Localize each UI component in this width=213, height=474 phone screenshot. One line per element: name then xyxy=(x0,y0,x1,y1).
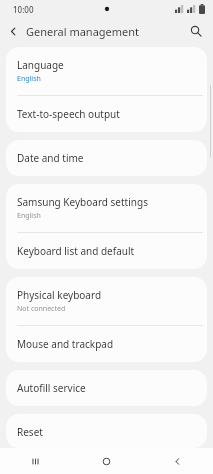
staticText: Samsung Keyboard settings xyxy=(17,195,148,209)
staticText: Keyboard list and default xyxy=(17,244,135,258)
staticText: Date and time xyxy=(17,151,84,165)
button[interactable]: Search xyxy=(183,18,209,44)
staticText: Language xyxy=(17,58,64,72)
staticText: Physical keyboard xyxy=(17,288,102,302)
button[interactable]: Keyboard list and default xyxy=(6,233,207,269)
staticText: Text-to-speech output xyxy=(17,107,120,121)
button[interactable]: Back xyxy=(0,18,26,44)
staticText: Reset xyxy=(17,425,43,437)
button[interactable]: Text-to-speech output xyxy=(6,96,207,132)
button[interactable]: Samsung Keyboard settings xyxy=(6,184,207,232)
staticText: Mouse and trackpad xyxy=(17,337,114,351)
button[interactable]: Date and time xyxy=(6,140,207,176)
button[interactable]: Recent apps xyxy=(0,448,71,474)
staticText: Not connected xyxy=(17,304,66,314)
button[interactable]: Language xyxy=(6,47,207,95)
button[interactable]: Reset xyxy=(6,414,207,448)
staticText: Autofill service xyxy=(17,381,86,395)
button[interactable]: Mouse and trackpad xyxy=(6,326,207,362)
button[interactable]: Physical keyboard xyxy=(6,277,207,325)
staticText: English xyxy=(17,74,41,84)
button[interactable]: Autofill service xyxy=(6,370,207,406)
staticText: 10:00 xyxy=(13,4,34,15)
button[interactable]: Back xyxy=(142,448,213,474)
staticText: General management xyxy=(26,24,140,39)
button[interactable]: Home xyxy=(71,448,142,474)
staticText: English xyxy=(17,211,41,221)
